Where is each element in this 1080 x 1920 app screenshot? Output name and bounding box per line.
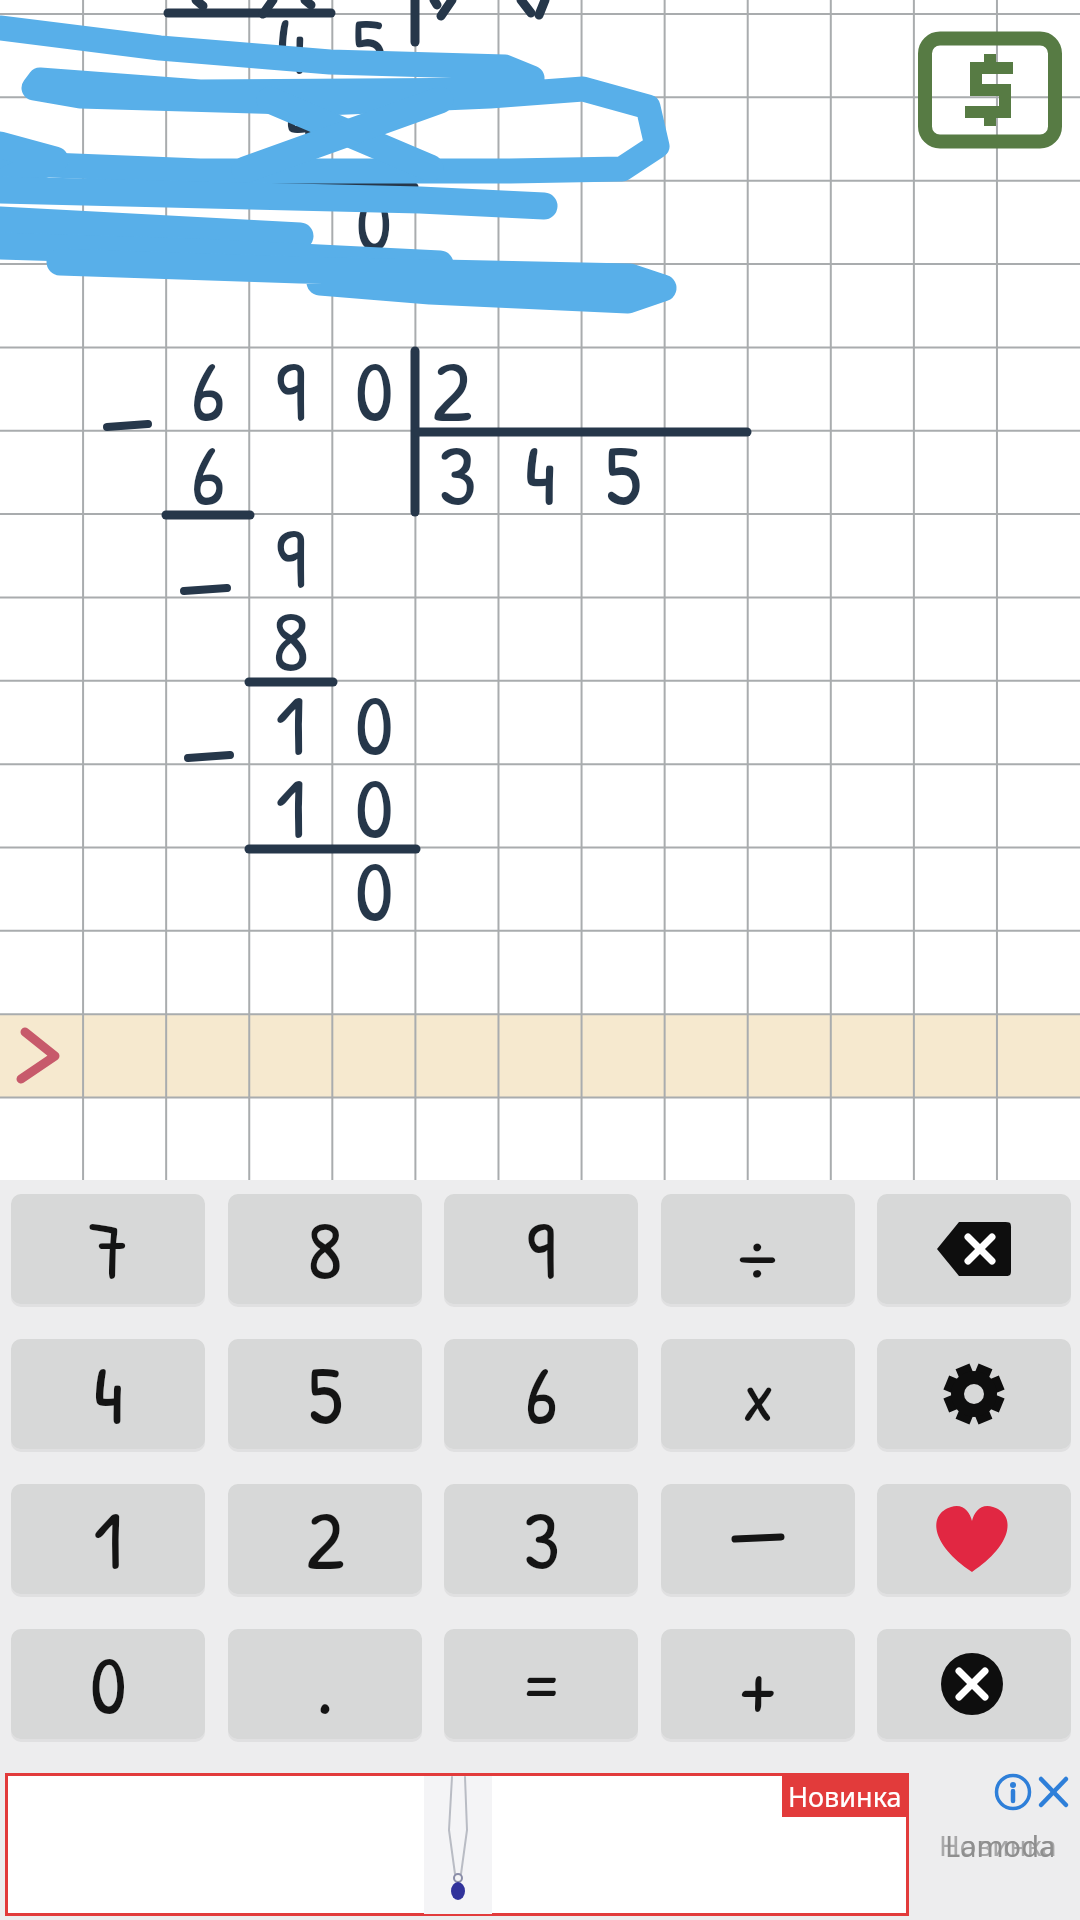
staticText: 9: [275, 498, 307, 614]
staticText: 6: [191, 415, 226, 531]
button[interactable]: [918, 31, 1062, 148]
button[interactable]: [995, 1774, 1033, 1812]
staticText: 0: [90, 1629, 127, 1739]
button[interactable]: 0: [11, 1629, 205, 1739]
button[interactable]: [877, 1629, 1071, 1739]
staticText: 0: [355, 665, 394, 781]
button[interactable]: 2: [228, 1484, 422, 1594]
staticText: 1: [93, 1484, 123, 1594]
button[interactable]: [877, 1194, 1071, 1304]
button[interactable]: =: [444, 1629, 638, 1739]
staticText: 6: [525, 1339, 558, 1449]
button[interactable]: x: [661, 1339, 855, 1449]
staticText: 4: [276, 0, 306, 99]
staticText: 1: [275, 748, 307, 864]
button[interactable]: 1: [11, 1484, 205, 1594]
staticText: 5: [308, 1339, 343, 1449]
button[interactable]: [661, 1484, 855, 1594]
staticText: 9: [275, 331, 307, 447]
button[interactable]: 9: [444, 1194, 638, 1304]
staticText: 5: [605, 415, 642, 531]
staticText: 2: [432, 331, 473, 447]
button[interactable]: [877, 1484, 1071, 1594]
button[interactable]: 3: [444, 1484, 638, 1594]
staticText: Новинка: [788, 1778, 902, 1815]
button[interactable]: 6: [444, 1339, 638, 1449]
button[interactable]: [5, 1773, 909, 1916]
staticText: 1: [275, 665, 307, 781]
staticText: 4: [93, 1339, 124, 1449]
staticText: 2: [306, 1484, 345, 1594]
button[interactable]: [1038, 1774, 1072, 1808]
button[interactable]: 8: [228, 1194, 422, 1304]
staticText: 3: [523, 1484, 560, 1594]
button[interactable]: +: [661, 1629, 855, 1739]
staticText: +: [739, 1630, 778, 1738]
staticText: .: [316, 1629, 334, 1739]
button[interactable]: ÷: [661, 1194, 855, 1304]
staticText: 5: [352, 0, 386, 100]
staticText: 0: [355, 748, 394, 864]
button[interactable]: 5: [228, 1339, 422, 1449]
staticText: Lamoda: [945, 1826, 1056, 1865]
button[interactable]: .: [228, 1629, 422, 1739]
staticText: x: [742, 1346, 775, 1443]
button[interactable]: 4: [11, 1339, 205, 1449]
staticText: 0: [355, 831, 394, 947]
staticText: 8: [272, 581, 310, 697]
staticText: 6: [191, 331, 226, 447]
button[interactable]: [0, 1015, 1080, 1097]
staticText: 0: [356, 168, 392, 276]
button[interactable]: 7: [11, 1194, 205, 1304]
button[interactable]: [877, 1339, 1071, 1449]
staticText: 8: [307, 1194, 343, 1304]
staticText: 4: [524, 415, 557, 531]
staticText: 7: [88, 1194, 129, 1304]
staticText: Новинка: [939, 1826, 1057, 1864]
staticText: =: [518, 1630, 564, 1738]
staticText: 9: [526, 1194, 557, 1304]
staticText: 0: [355, 331, 394, 447]
staticText: ÷: [736, 1194, 780, 1304]
staticText: 3: [438, 415, 477, 531]
staticText: 4: [285, 68, 315, 176]
